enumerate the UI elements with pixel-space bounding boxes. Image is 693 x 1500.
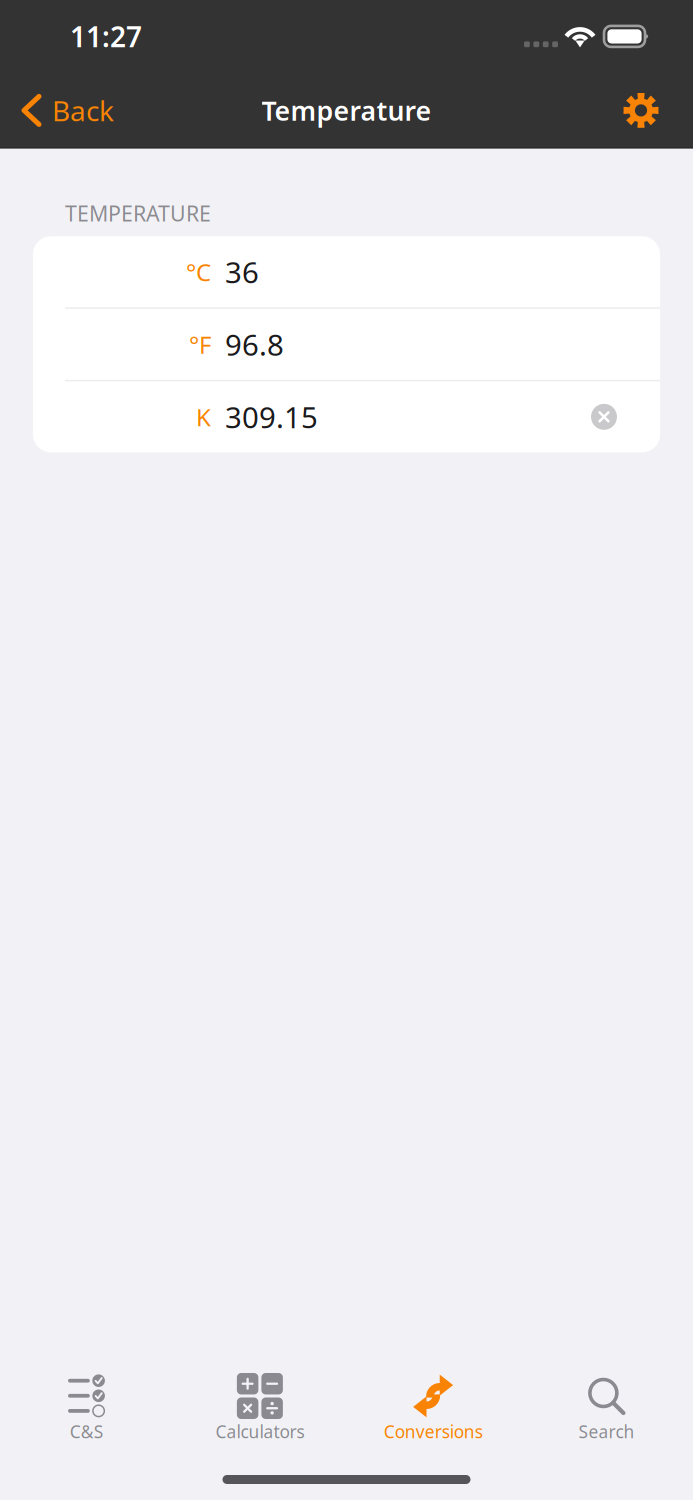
button[interactable]: Conversions [346, 1368, 520, 1456]
staticText: Back [52, 92, 114, 129]
button[interactable]: Calculators [173, 1368, 346, 1456]
staticText: 309.15 [225, 397, 318, 436]
staticText: 36 [225, 252, 259, 291]
staticText: °C [186, 256, 211, 288]
staticText: Search [578, 1420, 634, 1443]
button[interactable]: °F [33, 309, 660, 380]
staticText: K [196, 401, 211, 433]
staticText: TEMPERATURE [65, 199, 211, 227]
staticText: C&S [70, 1420, 104, 1443]
staticText: 11:27 [70, 18, 142, 55]
staticText: °F [189, 328, 211, 360]
button[interactable]: Search [520, 1368, 693, 1456]
staticText: Conversions [384, 1420, 483, 1443]
staticText: Calculators [215, 1420, 304, 1443]
button[interactable]: Clear [591, 404, 617, 430]
staticText: Temperature [261, 93, 431, 128]
button[interactable]: Back [0, 73, 130, 147]
button[interactable]: °C [33, 236, 660, 307]
staticText: 96.8 [225, 325, 284, 364]
button[interactable]: C&S [0, 1368, 173, 1456]
button[interactable]: K [33, 381, 660, 452]
button[interactable]: Settings [623, 73, 693, 147]
